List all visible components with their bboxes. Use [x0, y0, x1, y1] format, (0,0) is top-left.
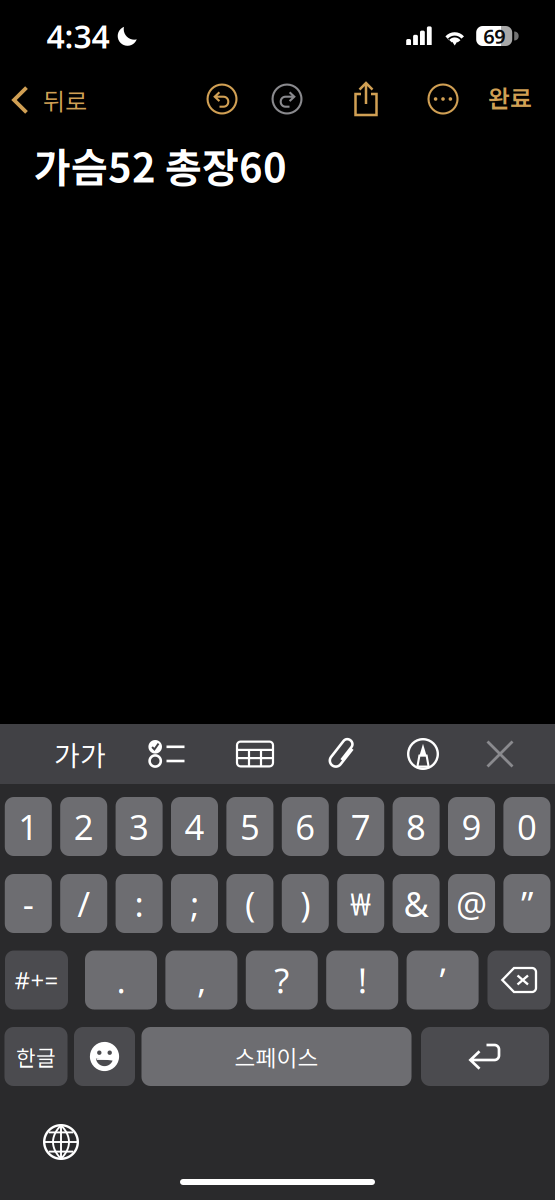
button[interactable]: 4: [171, 797, 218, 856]
staticText: 8: [406, 803, 426, 849]
staticText: 4:34: [46, 15, 109, 57]
staticText: &: [404, 880, 429, 926]
staticText: ’: [440, 957, 446, 1003]
button[interactable]: 뒤로: [0, 75, 99, 125]
button[interactable]: 닫기: [473, 728, 527, 780]
staticText: 9: [461, 803, 481, 849]
staticText: ?: [274, 957, 289, 1003]
button[interactable]: 6: [282, 797, 329, 856]
button[interactable]: 서식: [42, 728, 118, 780]
button[interactable]: -: [5, 874, 52, 933]
button[interactable]: 9: [448, 797, 495, 856]
button[interactable]: 0: [503, 797, 550, 856]
staticText: 2: [74, 803, 94, 849]
button[interactable]: (: [226, 874, 273, 933]
button[interactable]: #+=: [5, 950, 68, 1009]
staticText: 1: [18, 803, 38, 849]
staticText: 뒤로: [43, 83, 87, 117]
button[interactable]: @: [448, 874, 495, 933]
staticText: -: [23, 880, 34, 926]
button[interactable]: 다시 실행: [265, 77, 309, 121]
staticText: ”: [521, 880, 533, 926]
button[interactable]: 체크리스트: [138, 728, 196, 780]
button[interactable]: 마크업: [395, 728, 451, 780]
button[interactable]: &: [393, 874, 440, 933]
staticText: 스페이스: [234, 1040, 318, 1073]
staticText: (: [245, 880, 255, 926]
button[interactable]: 완료: [476, 72, 544, 122]
staticText: 한글: [16, 1041, 56, 1072]
button[interactable]: 첨부: [313, 728, 371, 780]
staticText: ,: [197, 957, 206, 1003]
button[interactable]: 7: [337, 797, 384, 856]
staticText: ₩: [350, 883, 371, 924]
button[interactable]: ;: [171, 874, 218, 933]
button[interactable]: 5: [226, 797, 273, 856]
staticText: 6: [295, 803, 315, 849]
button[interactable]: ’: [407, 950, 479, 1009]
button[interactable]: :: [116, 874, 163, 933]
button[interactable]: 1: [5, 797, 52, 856]
staticText: ): [300, 880, 310, 926]
staticText: /: [77, 880, 90, 926]
button[interactable]: 더 보기: [420, 76, 466, 122]
button[interactable]: /: [60, 874, 107, 933]
button[interactable]: ?: [246, 950, 318, 1009]
button[interactable]: 스페이스: [141, 1027, 411, 1086]
staticText: :: [135, 880, 144, 926]
staticText: 4: [184, 803, 204, 849]
staticText: 5: [240, 803, 260, 849]
staticText: @: [456, 880, 487, 926]
staticText: !: [358, 957, 367, 1003]
staticText: 3: [129, 803, 149, 849]
button[interactable]: ,: [165, 950, 237, 1009]
button[interactable]: 공유: [343, 76, 389, 122]
button[interactable]: 표: [226, 728, 284, 780]
staticText: 0: [517, 803, 537, 849]
staticText: ;: [190, 880, 199, 926]
button[interactable]: 3: [116, 797, 163, 856]
button[interactable]: 8: [393, 797, 440, 856]
button[interactable]: 실행 취소: [200, 77, 244, 121]
staticText: 완료: [488, 80, 532, 114]
staticText: #+=: [14, 964, 58, 996]
button[interactable]: !: [326, 950, 398, 1009]
staticText: .: [116, 957, 125, 1003]
staticText: 가가: [54, 734, 106, 774]
staticText: 69: [483, 23, 505, 49]
button[interactable]: 2: [60, 797, 107, 856]
button[interactable]: 이모티콘: [74, 1027, 135, 1086]
button[interactable]: 한글: [4, 1027, 67, 1086]
button[interactable]: 줄바꿈: [421, 1027, 549, 1086]
staticText: 7: [351, 803, 371, 849]
button[interactable]: .: [85, 950, 157, 1009]
button[interactable]: 지우기: [487, 950, 550, 1009]
staticText: 가슴52 총장60: [34, 136, 287, 194]
button[interactable]: ): [282, 874, 329, 933]
button[interactable]: ”: [503, 874, 550, 933]
button[interactable]: ₩: [337, 874, 384, 933]
button[interactable]: 다음 키보드: [34, 1115, 88, 1169]
